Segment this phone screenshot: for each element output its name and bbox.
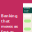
staticText: Banking that moves as fast as you do (1, 13, 18, 32)
staticText: Balance (24, 6, 30, 13)
